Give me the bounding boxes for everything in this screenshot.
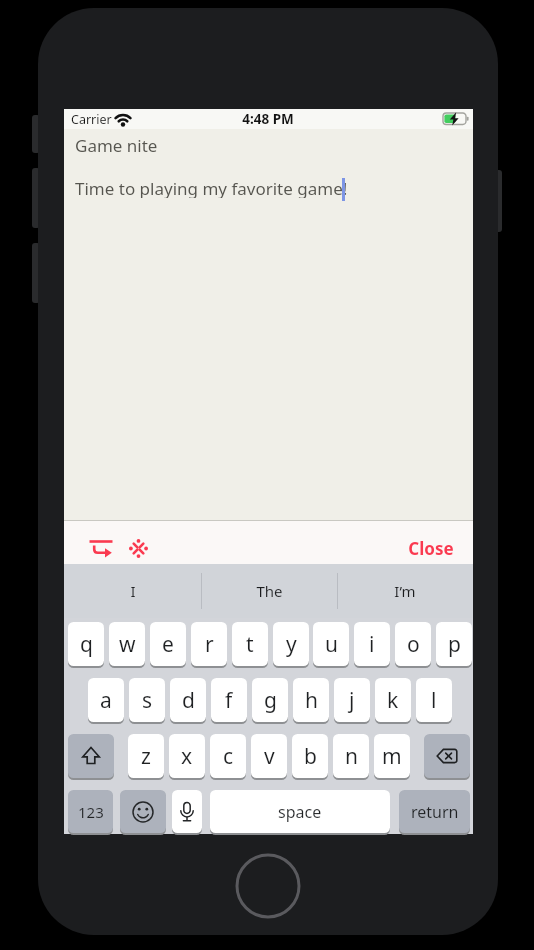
staticText: Close: [408, 537, 454, 559]
button[interactable]: u: [313, 622, 349, 666]
button[interactable]: m: [374, 734, 410, 778]
staticText: I’m: [394, 581, 416, 601]
button[interactable]: q: [68, 622, 104, 666]
button[interactable]: z: [128, 734, 164, 778]
button[interactable]: [129, 539, 149, 559]
staticText: return: [411, 801, 459, 823]
staticText: x: [181, 742, 193, 771]
staticText: a: [100, 686, 112, 715]
staticText: i: [369, 630, 375, 659]
staticText: n: [345, 742, 358, 771]
staticText: Time to playing my favorite game!: [75, 177, 348, 198]
button[interactable]: a: [88, 678, 124, 722]
button[interactable]: x: [169, 734, 205, 778]
staticText: v: [264, 742, 275, 771]
staticText: z: [141, 742, 151, 771]
staticText: Carrier: [71, 111, 112, 128]
button[interactable]: return: [399, 790, 470, 833]
button[interactable]: r: [191, 622, 227, 666]
button[interactable]: [120, 790, 166, 833]
staticText: j: [349, 686, 355, 715]
button[interactable]: [424, 734, 470, 778]
staticText: The: [256, 581, 283, 601]
button[interactable]: y: [273, 622, 309, 666]
button[interactable]: The: [201, 564, 338, 618]
staticText: l: [431, 686, 437, 715]
button[interactable]: i: [354, 622, 390, 666]
staticText: c: [223, 742, 234, 771]
button[interactable]: [86, 536, 118, 562]
staticText: u: [325, 630, 338, 659]
staticText: f: [225, 686, 233, 715]
staticText: I: [130, 581, 136, 601]
staticText: 123: [78, 802, 104, 822]
staticText: p: [448, 630, 461, 659]
staticText: w: [119, 630, 136, 659]
button[interactable]: v: [251, 734, 287, 778]
staticText: t: [246, 630, 254, 659]
button[interactable]: d: [170, 678, 206, 722]
staticText: g: [264, 686, 277, 715]
staticText: Game nite: [75, 134, 158, 154]
button[interactable]: [68, 734, 114, 778]
staticText: k: [387, 686, 399, 715]
button[interactable]: t: [232, 622, 268, 666]
button[interactable]: b: [292, 734, 328, 778]
button[interactable]: g: [252, 678, 288, 722]
button[interactable]: s: [129, 678, 165, 722]
staticText: space: [278, 801, 322, 823]
staticText: r: [205, 630, 214, 659]
button[interactable]: k: [375, 678, 411, 722]
button[interactable]: I’m: [337, 564, 473, 618]
staticText: q: [80, 630, 93, 659]
staticText: d: [182, 686, 195, 715]
button[interactable]: [172, 790, 202, 833]
staticText: b: [304, 742, 317, 771]
staticText: o: [407, 630, 420, 659]
button[interactable]: f: [211, 678, 247, 722]
staticText: y: [286, 630, 297, 659]
button[interactable]: [233, 851, 303, 921]
staticText: 4:48 PM: [242, 110, 294, 128]
button[interactable]: 123: [68, 790, 113, 833]
staticText: m: [382, 742, 402, 771]
button[interactable]: o: [395, 622, 431, 666]
button[interactable]: space: [210, 790, 390, 833]
button[interactable]: l: [416, 678, 452, 722]
button[interactable]: h: [293, 678, 329, 722]
button[interactable]: c: [210, 734, 246, 778]
staticText: e: [162, 630, 174, 659]
button[interactable]: I: [64, 564, 201, 618]
button[interactable]: e: [150, 622, 186, 666]
staticText: h: [305, 686, 318, 715]
button[interactable]: p: [436, 622, 472, 666]
button[interactable]: j: [334, 678, 370, 722]
staticText: s: [142, 686, 153, 715]
button[interactable]: n: [333, 734, 369, 778]
button[interactable]: Close: [398, 537, 464, 559]
button[interactable]: w: [109, 622, 145, 666]
